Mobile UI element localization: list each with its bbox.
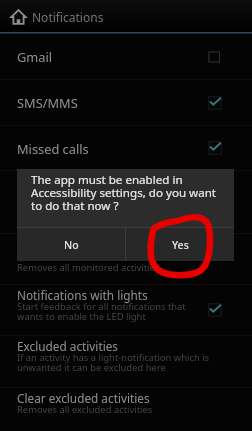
staticText: Clear monitored activities <box>17 238 159 254</box>
staticText: Missed calls <box>17 140 89 157</box>
staticText: Yes <box>172 238 189 252</box>
button[interactable]: Notifications with lights <box>0 285 252 335</box>
staticText: If an activity has a light-notification … <box>17 351 210 374</box>
staticText: SMS/MMS <box>17 94 78 111</box>
other: Home <box>11 9 26 25</box>
staticText: Monitored activities <box>17 175 127 191</box>
button[interactable]: Missed calls <box>0 126 252 170</box>
button[interactable]: No <box>17 228 125 261</box>
staticText: Excluded activities <box>17 338 119 354</box>
button[interactable]: Excluded activities <box>0 336 252 387</box>
staticText: Select which activities should be monito… <box>17 189 208 212</box>
staticText: Removes all excluded activities <box>17 403 153 416</box>
staticText: Removes all monitored activities <box>17 261 160 274</box>
button[interactable]: SMS/MMS <box>0 80 252 125</box>
button[interactable]: Gmail <box>0 34 252 79</box>
button[interactable]: Home <box>0 0 252 32</box>
staticText: Notifications with lights <box>17 287 148 303</box>
button[interactable]: Yes <box>126 228 234 261</box>
staticText: Notifications <box>32 9 104 25</box>
staticText: The app must be enabled in Accessibility… <box>31 172 227 213</box>
staticText: Clear excluded activities <box>17 390 150 406</box>
button[interactable]: Clear monitored activities <box>0 234 252 284</box>
staticText: Start feedback for all notifications tha… <box>17 300 186 323</box>
button[interactable]: Clear excluded activities <box>0 388 252 431</box>
button[interactable]: Monitored activities <box>0 171 252 233</box>
staticText: Gmail <box>17 48 53 65</box>
staticText: No <box>64 238 79 252</box>
